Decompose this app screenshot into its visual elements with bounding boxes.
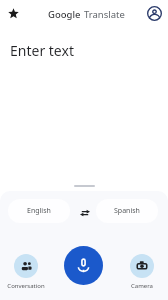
- staticText: Camera: [131, 282, 153, 290]
- button[interactable]: Conversation: [2, 254, 50, 290]
- staticText: Google: [48, 8, 81, 21]
- button[interactable]: English: [8, 199, 70, 223]
- button[interactable]: Microphone: [64, 246, 103, 285]
- staticText: Translate: [84, 8, 125, 21]
- staticText: English: [27, 206, 51, 216]
- button[interactable]: Account: [144, 3, 165, 24]
- button[interactable]: Spanish: [96, 199, 158, 223]
- button[interactable]: Swap languages: [73, 201, 97, 225]
- staticText: Enter text: [10, 41, 74, 60]
- button[interactable]: Saved: [3, 3, 24, 24]
- staticText: Conversation: [7, 282, 45, 290]
- button[interactable]: Camera: [118, 254, 166, 290]
- staticText: Spanish: [114, 206, 140, 216]
